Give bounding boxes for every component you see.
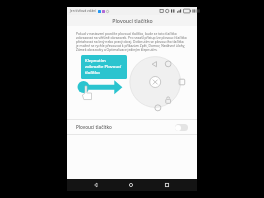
staticText: přetahovat na levý nebo pravý okraj. Dot… (76, 39, 184, 43)
staticText: Jen tísňová volání (70, 9, 96, 13)
button[interactable]: Plovoucí tlačítko (67, 120, 197, 134)
staticText: zobrazovat na většině obrazovek. Pro sna… (76, 35, 187, 39)
other: Tap gesture (76, 80, 134, 102)
button[interactable]: Recent apps (161, 179, 173, 191)
staticText: Plovoucí tlačítko (76, 124, 112, 130)
button[interactable]: Home (125, 179, 137, 191)
staticText: je možné se rychle přesouvat k příkazům … (76, 43, 186, 47)
button[interactable]: Back (90, 179, 102, 191)
staticText: tlačítko (85, 70, 100, 76)
staticText: Zámek obrazovky a Optimalizace jediným k… (76, 47, 158, 51)
staticText: Plovoucí tlačítko (112, 17, 153, 24)
staticText: zobrazíte Plovoucí (85, 64, 122, 70)
button[interactable]: Klepnutím (81, 55, 127, 79)
staticText: Klepnutím (85, 58, 106, 64)
staticText: Pokud v nastavení povolíte plovoucí tlač… (76, 31, 177, 35)
